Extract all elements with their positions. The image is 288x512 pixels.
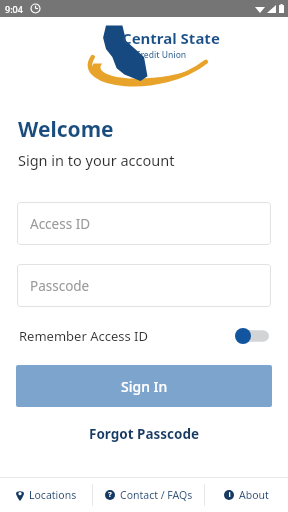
staticText: Locations	[29, 488, 77, 502]
staticText: Remember Access ID	[19, 327, 148, 345]
staticText: Forgot Passcode	[89, 425, 200, 443]
button[interactable]: About	[205, 478, 288, 512]
button[interactable]: Remember Access ID	[0, 321, 288, 351]
staticText: Passcode	[30, 277, 90, 295]
button[interactable]: Access ID	[17, 202, 271, 245]
staticText: Access ID	[30, 215, 91, 233]
staticText: Credit Union	[135, 49, 187, 61]
staticText: 9:04	[5, 3, 23, 15]
staticText: About	[239, 488, 269, 502]
staticText: Sign In	[121, 377, 168, 396]
button[interactable]: Locations	[0, 478, 92, 512]
button[interactable]: Forgot Passcode	[0, 425, 288, 443]
button[interactable]: Contact / FAQs	[93, 478, 204, 512]
button[interactable]: Sign In	[16, 365, 272, 407]
staticText: ?	[108, 490, 112, 500]
staticText: Welcome	[18, 115, 114, 144]
staticText: Sign in to your account	[18, 150, 175, 170]
staticText: i	[228, 490, 231, 500]
staticText: Central State	[122, 28, 220, 48]
button[interactable]: Passcode	[17, 264, 271, 307]
staticText: Contact / FAQs	[120, 488, 193, 502]
